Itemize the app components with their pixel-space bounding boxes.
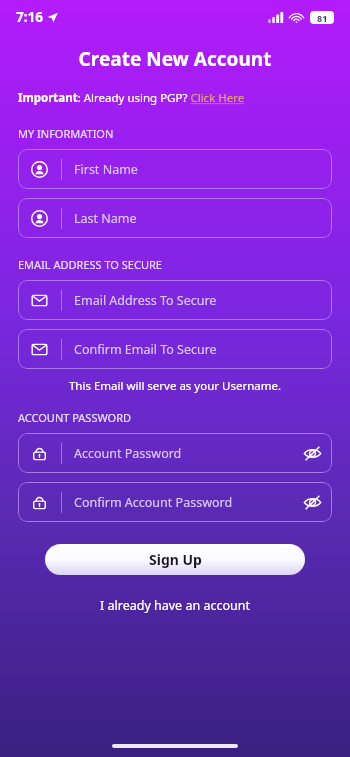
button[interactable]: Account Password (18, 433, 332, 473)
staticText: Sign Up (149, 550, 202, 569)
staticText: I already have an account (100, 597, 250, 614)
staticText: Account Password (74, 445, 182, 462)
staticText: 81 (317, 12, 328, 24)
staticText: Important: Already using PGP? Click Here (18, 90, 245, 106)
staticText: Confirm Account Password (74, 494, 233, 511)
button[interactable]: Confirm Email To Secure (18, 329, 332, 369)
staticText: Email Address To Secure (74, 292, 217, 309)
staticText: This Email will serve as your Username. (0, 378, 350, 394)
staticText: EMAIL ADDRESS TO SECURE (18, 257, 162, 272)
button[interactable]: Email Address To Secure (18, 280, 332, 320)
staticText: Confirm Email To Secure (74, 341, 217, 358)
button[interactable]: Sign Up (45, 544, 305, 575)
staticText: Last Name (74, 210, 137, 227)
button[interactable]: Confirm Account Password (18, 482, 332, 522)
staticText: First Name (74, 161, 138, 178)
staticText: ACCOUNT PASSWORD (18, 410, 132, 425)
staticText: MY INFORMATION (18, 126, 114, 141)
staticText: Create New Account (0, 46, 350, 72)
button[interactable]: Last Name (18, 198, 332, 238)
button[interactable]: I already have an account (90, 593, 260, 618)
button[interactable]: Show password (296, 437, 328, 469)
button[interactable]: Show password (296, 486, 328, 518)
staticText: 7:16 (16, 8, 43, 26)
button[interactable]: Important: Already using PGP? Click Here (18, 90, 245, 106)
button[interactable]: First Name (18, 149, 332, 189)
